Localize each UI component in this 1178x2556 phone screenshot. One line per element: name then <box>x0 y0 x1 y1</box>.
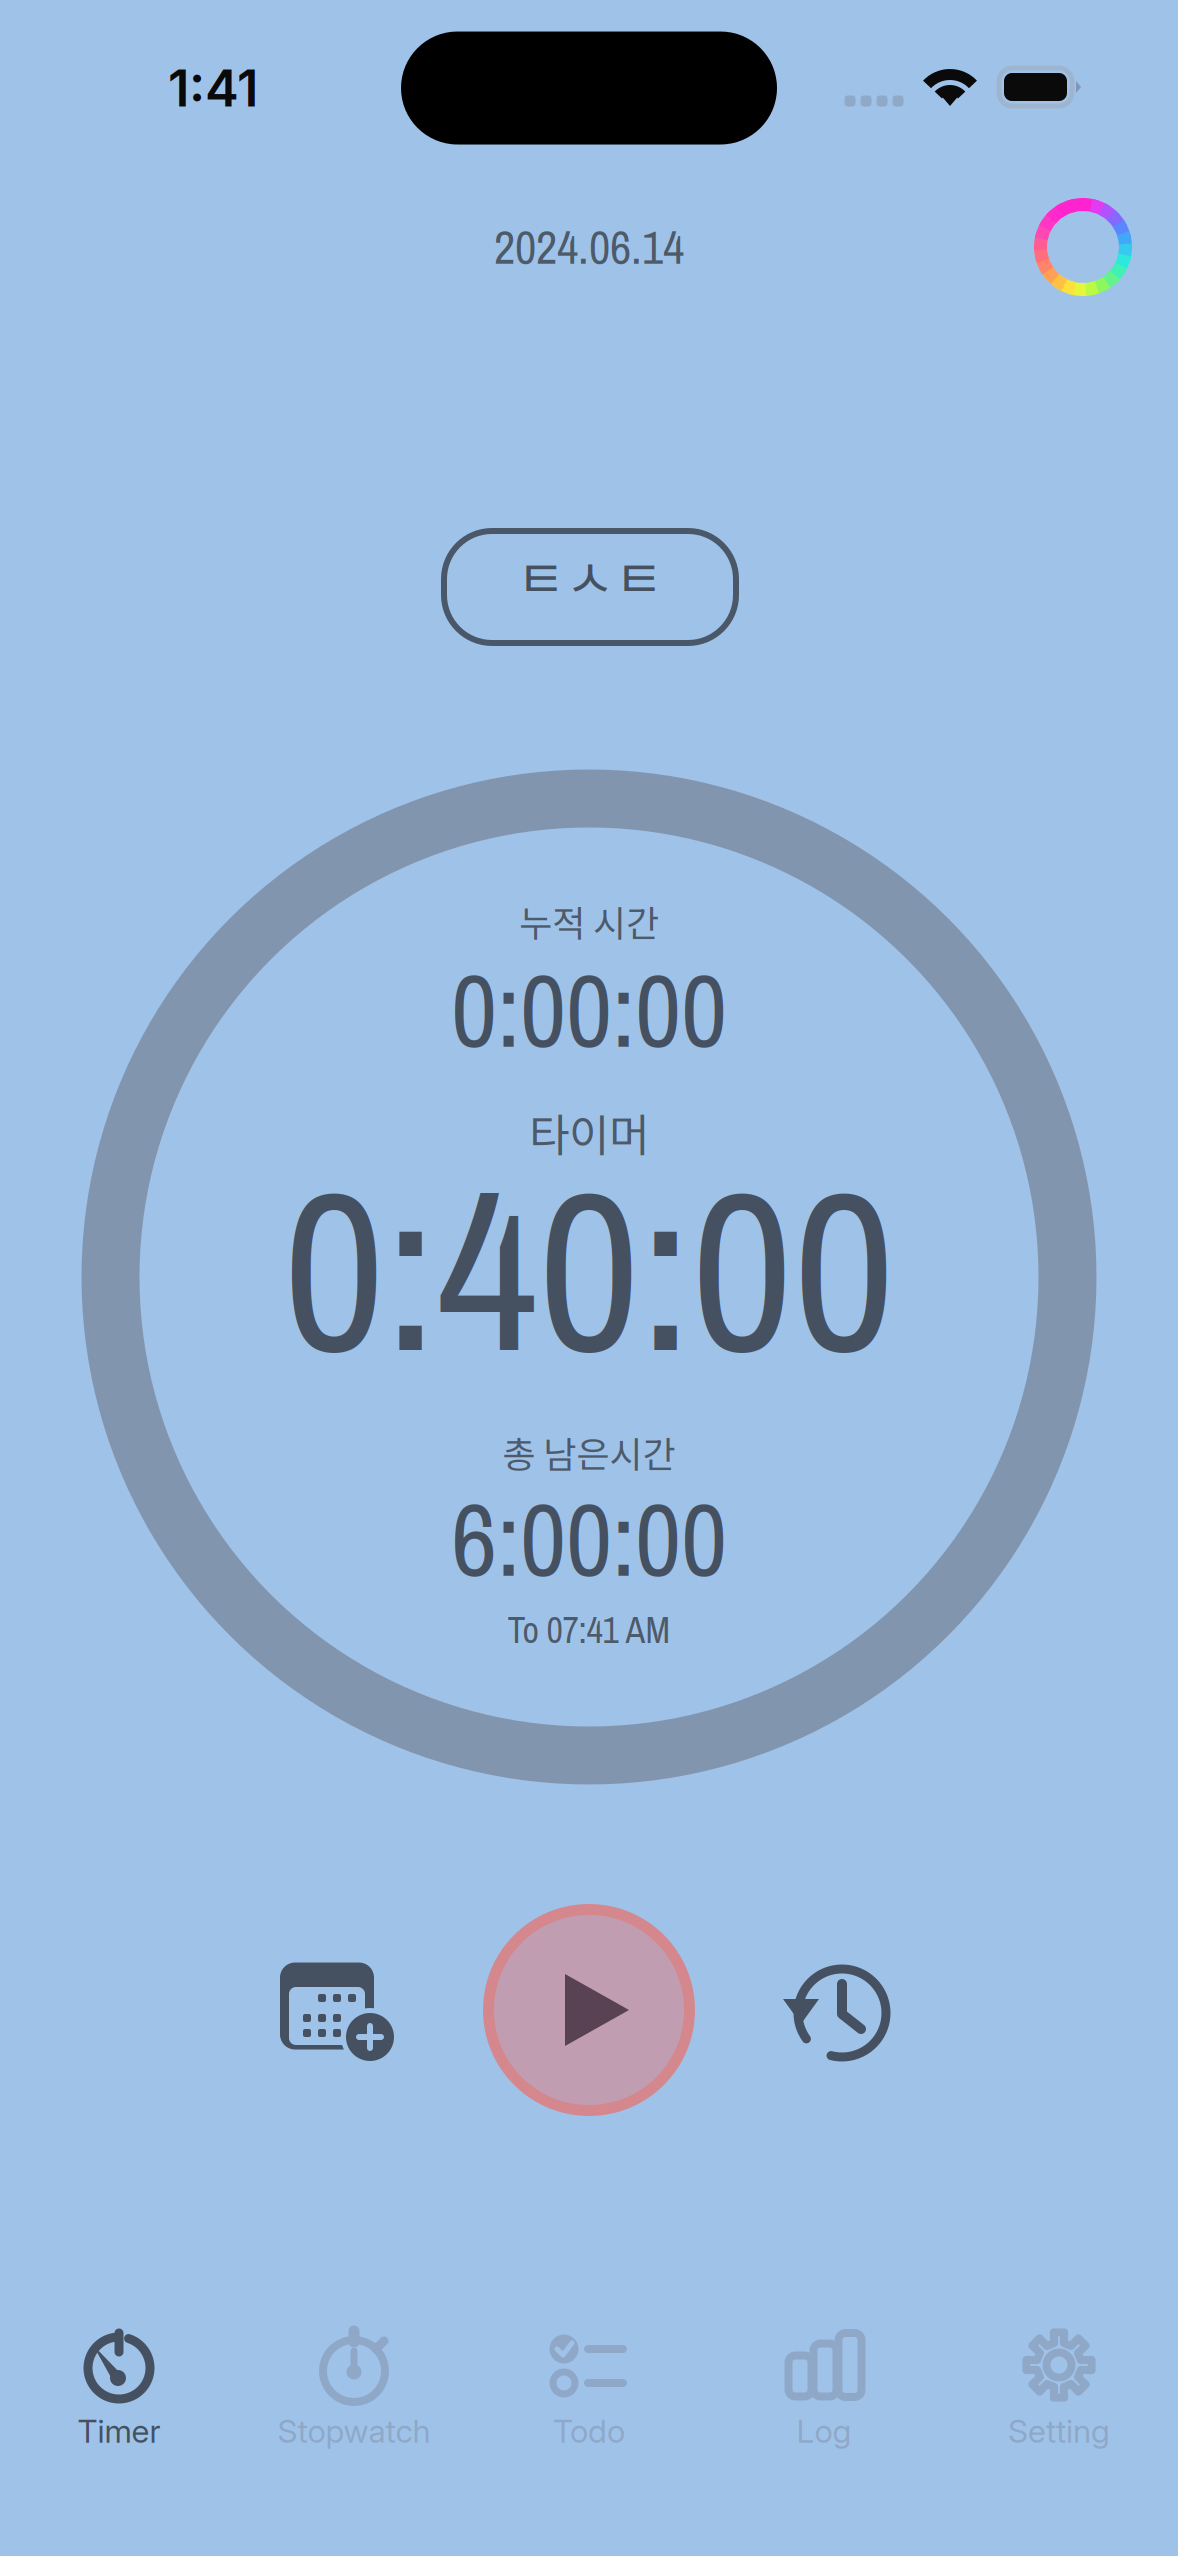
button[interactable]: Timer <box>1 2309 236 2479</box>
button[interactable]: Todo <box>471 2309 706 2479</box>
button[interactable]: ㅌㅅㅌ <box>444 531 736 643</box>
staticText: 누적 시간 <box>519 895 659 947</box>
staticText: ㅌㅅㅌ <box>516 536 663 614</box>
staticText: 총 남은시간 <box>502 1426 675 1478</box>
button[interactable]: Add schedule <box>273 1957 405 2083</box>
staticText: Todo <box>553 2412 625 2450</box>
staticText: Setting <box>1008 2412 1110 2450</box>
staticText: 0:40:00 <box>283 1118 895 1420</box>
staticText: Stopwatch <box>277 2412 430 2450</box>
staticText: 2024.06.14 <box>494 216 684 278</box>
button[interactable]: Theme colour <box>1031 195 1135 299</box>
staticText: 0:00:00 <box>451 942 727 1078</box>
staticText: 6:00:00 <box>451 1471 727 1607</box>
button[interactable]: Start timer <box>483 1904 695 2116</box>
staticText: To 07:41 AM <box>507 1606 670 1654</box>
button[interactable]: History <box>774 1951 898 2075</box>
button[interactable]: Setting <box>941 2309 1176 2479</box>
staticText: Timer <box>77 2412 160 2450</box>
staticText: 1:41 <box>168 57 258 119</box>
button[interactable]: Log <box>706 2309 941 2479</box>
staticText: Log <box>796 2412 851 2450</box>
staticText: 타이머 <box>529 1100 649 1164</box>
button[interactable]: Stopwatch <box>236 2309 471 2479</box>
